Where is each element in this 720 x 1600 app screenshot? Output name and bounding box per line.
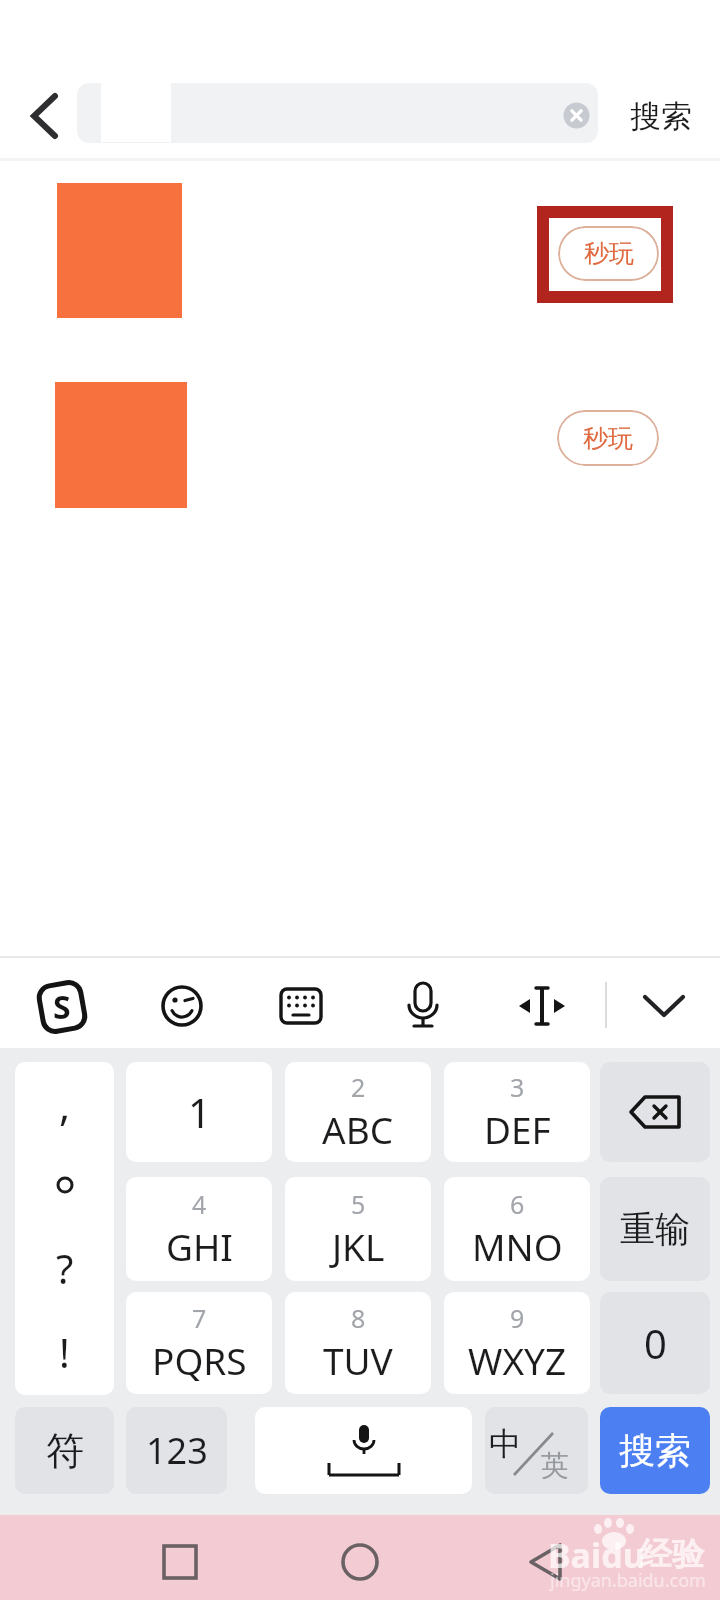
staticText: jingyan.baidu.com <box>550 1568 706 1593</box>
button[interactable]: 中 <box>485 1407 588 1494</box>
staticText: 秒玩 <box>584 238 634 269</box>
button[interactable]: 0 <box>600 1292 710 1394</box>
staticText: 中 <box>489 1424 521 1464</box>
button[interactable]: 搜索 <box>600 1407 710 1494</box>
button[interactable]: 符 <box>15 1407 114 1494</box>
button[interactable]: 7 <box>126 1292 272 1394</box>
button[interactable] <box>20 88 70 144</box>
button[interactable] <box>404 980 442 1032</box>
staticText: 4 <box>192 1187 207 1221</box>
staticText: 2 <box>351 1070 366 1104</box>
staticText: TUV <box>323 1335 393 1385</box>
staticText: 搜索 <box>630 97 692 136</box>
staticText: 6 <box>510 1187 525 1221</box>
button[interactable] <box>638 988 690 1028</box>
staticText: 重输 <box>620 1207 690 1251</box>
staticText: Baidu <box>548 1532 645 1578</box>
button[interactable]: 9 <box>444 1292 590 1394</box>
staticText: 9 <box>510 1301 525 1335</box>
button[interactable]: 重输 <box>600 1177 710 1281</box>
button[interactable]: 秒玩 <box>557 410 659 466</box>
button[interactable] <box>512 984 572 1028</box>
button[interactable]: 2 <box>285 1062 431 1162</box>
staticText: 搜索 <box>619 1428 691 1473</box>
button[interactable] <box>600 1062 710 1162</box>
button[interactable]: 1 <box>126 1062 272 1162</box>
staticText: 符 <box>46 1427 84 1475</box>
staticText: ABC <box>322 1104 394 1154</box>
staticText: PQRS <box>152 1335 247 1385</box>
staticText: 123 <box>146 1426 208 1475</box>
button[interactable]: 5 <box>285 1177 431 1281</box>
button[interactable]: 3 <box>444 1062 590 1162</box>
staticText: 经验 <box>640 1534 704 1574</box>
staticText: ! <box>59 1325 70 1379</box>
button[interactable] <box>146 1528 214 1596</box>
button[interactable]: , <box>15 1062 114 1395</box>
button[interactable] <box>255 1407 472 1494</box>
staticText: S <box>53 985 71 1029</box>
button[interactable]: 8 <box>285 1292 431 1394</box>
staticText: 1 <box>188 1085 211 1139</box>
button[interactable] <box>326 1528 394 1596</box>
button[interactable]: 4 <box>126 1177 272 1281</box>
button[interactable]: 搜索 <box>622 94 700 138</box>
staticText: 0 <box>644 1316 667 1370</box>
button[interactable] <box>279 986 323 1026</box>
button[interactable] <box>160 984 204 1028</box>
button[interactable]: 秒玩 <box>558 226 659 281</box>
staticText: MNO <box>472 1221 563 1271</box>
staticText: 5 <box>351 1187 366 1221</box>
button[interactable]: 6 <box>444 1177 590 1281</box>
staticText: 7 <box>192 1301 207 1335</box>
button[interactable]: 123 <box>126 1407 227 1494</box>
staticText: GHI <box>166 1221 233 1271</box>
staticText: 3 <box>510 1070 525 1104</box>
staticText: DEF <box>484 1104 551 1154</box>
button[interactable] <box>563 102 590 129</box>
staticText: 秒玩 <box>583 423 633 454</box>
staticText: WXYZ <box>468 1335 567 1385</box>
staticText: , <box>59 1076 71 1133</box>
button[interactable]: S <box>34 980 90 1034</box>
staticText: JKL <box>332 1221 385 1271</box>
staticText: 英 <box>541 1448 569 1483</box>
staticText: ? <box>56 1241 74 1295</box>
staticText: 8 <box>351 1301 366 1335</box>
button[interactable] <box>516 1528 584 1596</box>
button[interactable] <box>77 83 598 143</box>
